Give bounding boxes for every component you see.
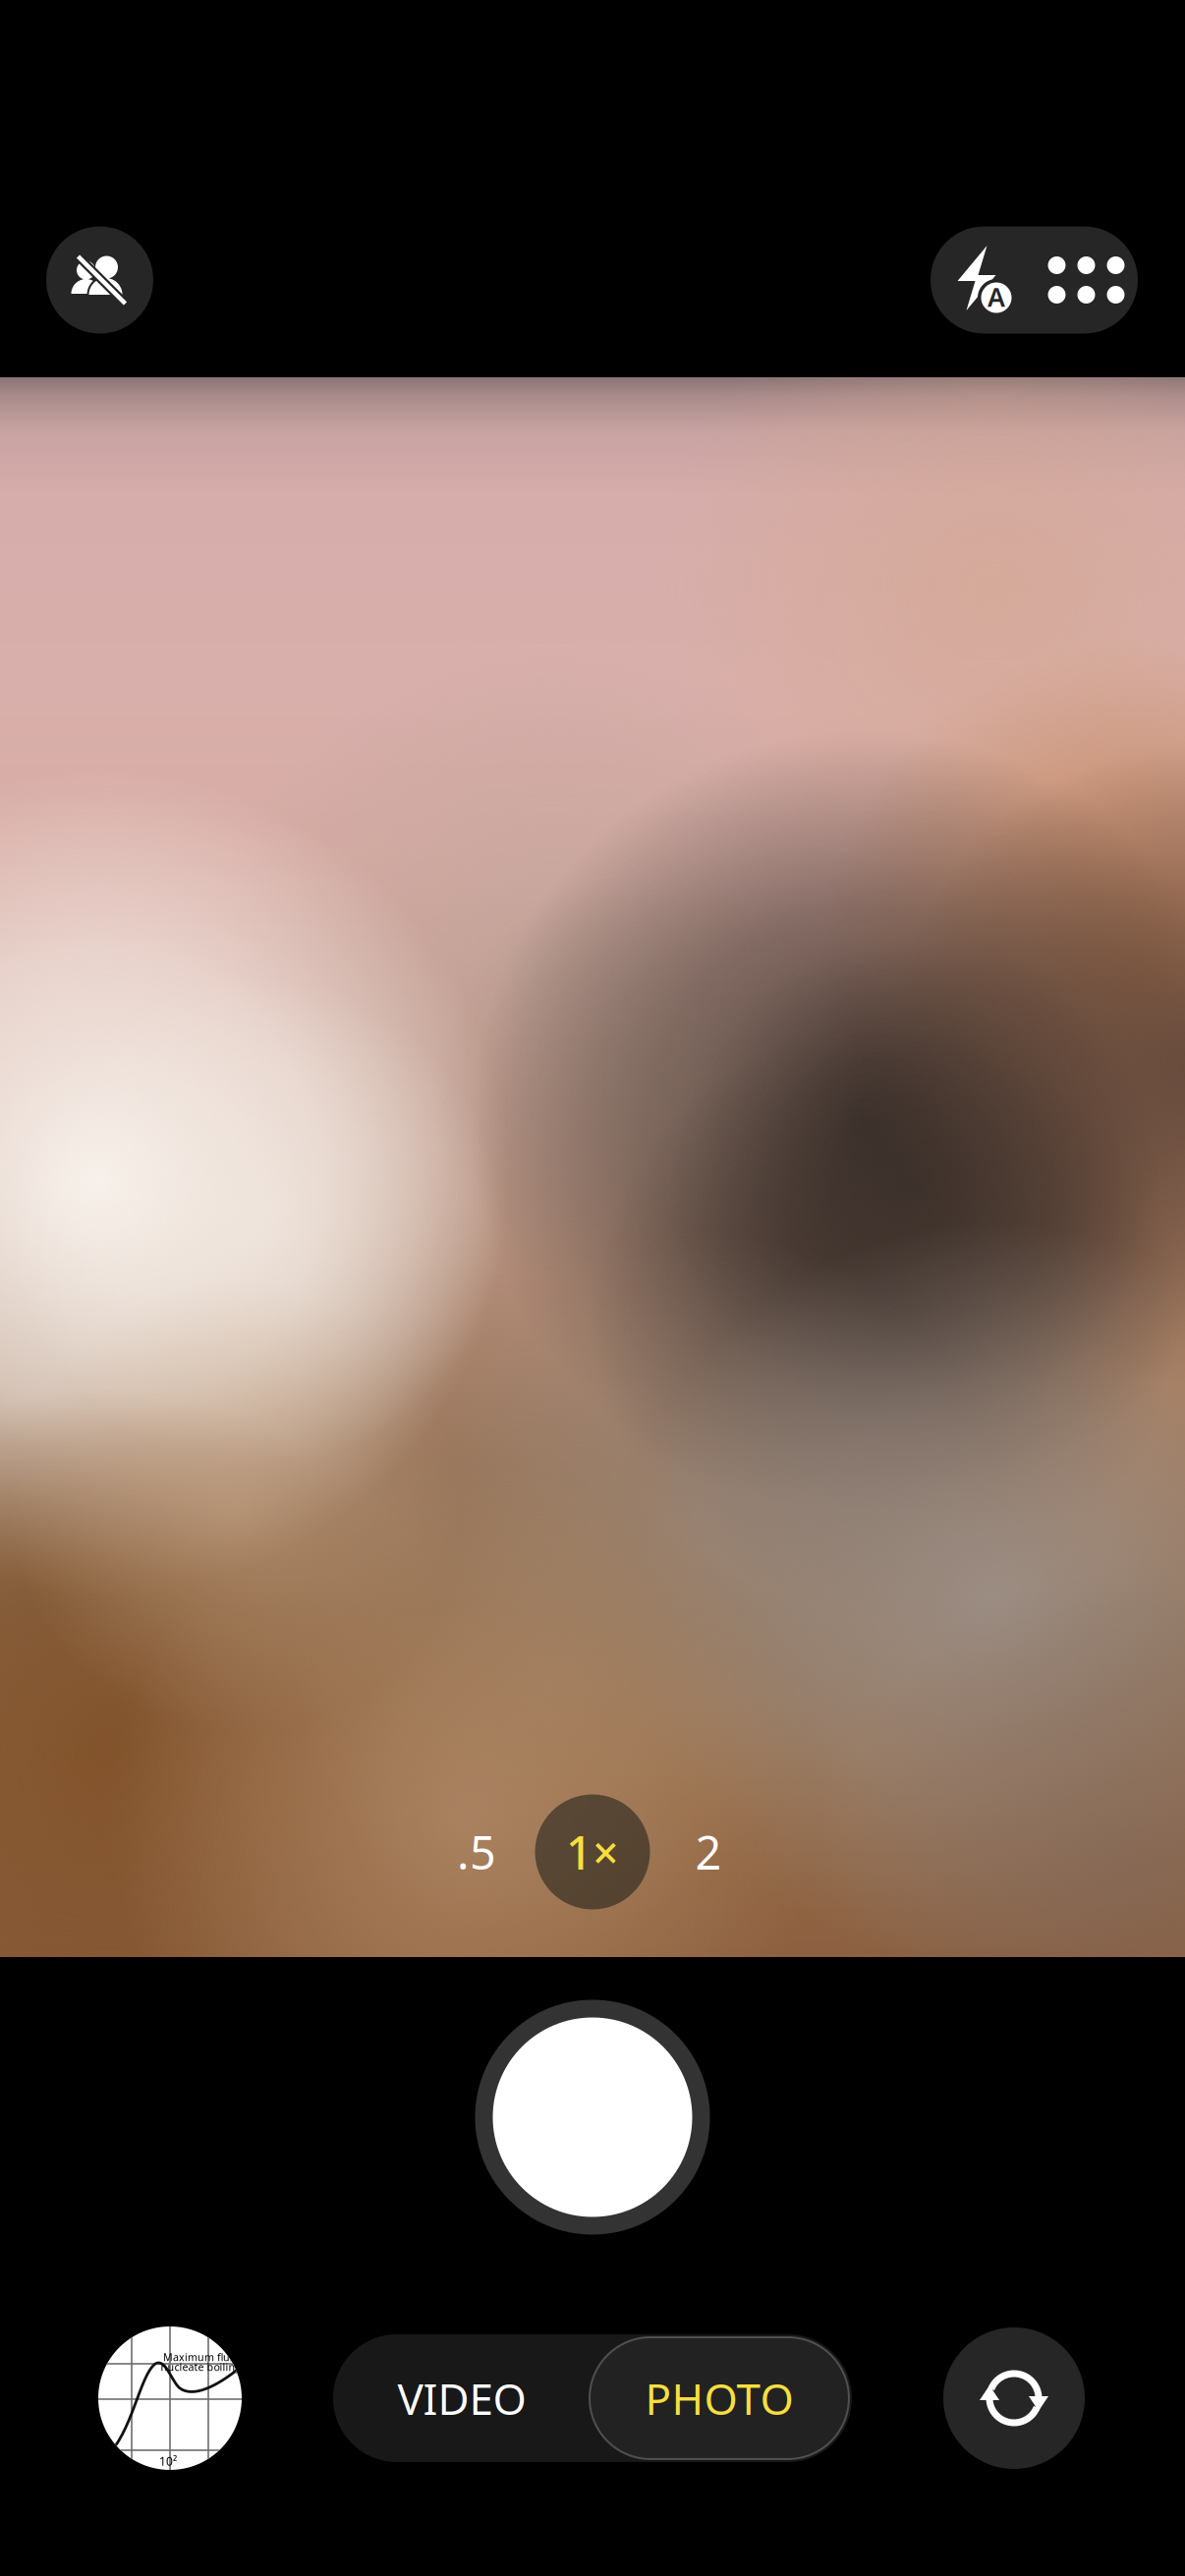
- staticText: nucleate boiling: [161, 2360, 242, 2374]
- staticText: 1×: [566, 1821, 619, 1882]
- staticText: .5: [457, 1821, 496, 1882]
- button[interactable]: Flash auto: [931, 226, 1035, 334]
- staticText: 2: [695, 1821, 722, 1882]
- button[interactable]: 1×: [535, 1794, 650, 1910]
- button[interactable]: .5: [419, 1794, 535, 1910]
- button[interactable]: Shared library off: [46, 226, 153, 334]
- staticText: 10²: [159, 2453, 177, 2469]
- button[interactable]: Photo library: [98, 2326, 242, 2470]
- staticText: A: [987, 279, 1005, 314]
- button[interactable]: PHOTO: [590, 2337, 849, 2459]
- button[interactable]: More options: [1035, 226, 1138, 334]
- button[interactable]: VIDEO: [334, 2334, 590, 2462]
- button[interactable]: Switch camera: [943, 2327, 1085, 2469]
- staticText: PHOTO: [645, 2369, 793, 2427]
- staticText: VIDEO: [397, 2369, 526, 2427]
- staticText: Maximum flux: [163, 2350, 236, 2364]
- button[interactable]: Take photo: [475, 2000, 710, 2235]
- button[interactable]: 2: [650, 1794, 766, 1910]
